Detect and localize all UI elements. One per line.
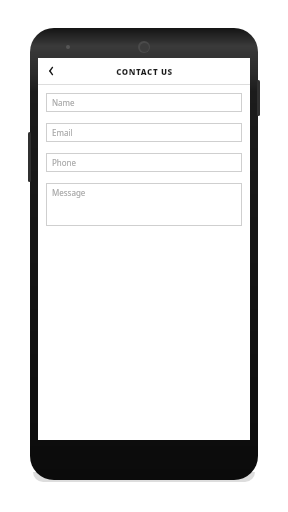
- button[interactable]: Message: [46, 183, 242, 226]
- staticText: Message: [52, 187, 86, 198]
- staticText: Phone: [52, 157, 77, 168]
- button[interactable]: Email: [46, 123, 242, 142]
- staticText: CONTACT US: [116, 66, 173, 77]
- button[interactable]: Phone: [46, 153, 242, 172]
- button[interactable]: Back: [38, 58, 64, 84]
- staticText: Name: [52, 97, 75, 108]
- button[interactable]: Name: [46, 93, 242, 112]
- staticText: Email: [52, 127, 73, 138]
